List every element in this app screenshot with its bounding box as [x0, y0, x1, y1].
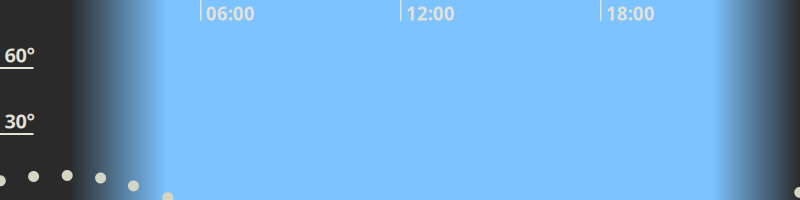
staticText: 06:00	[206, 1, 255, 26]
staticText: 30°	[5, 107, 35, 134]
staticText: 18:00	[606, 1, 655, 26]
staticText: 12:00	[406, 1, 455, 26]
staticText: 60°	[5, 41, 35, 68]
